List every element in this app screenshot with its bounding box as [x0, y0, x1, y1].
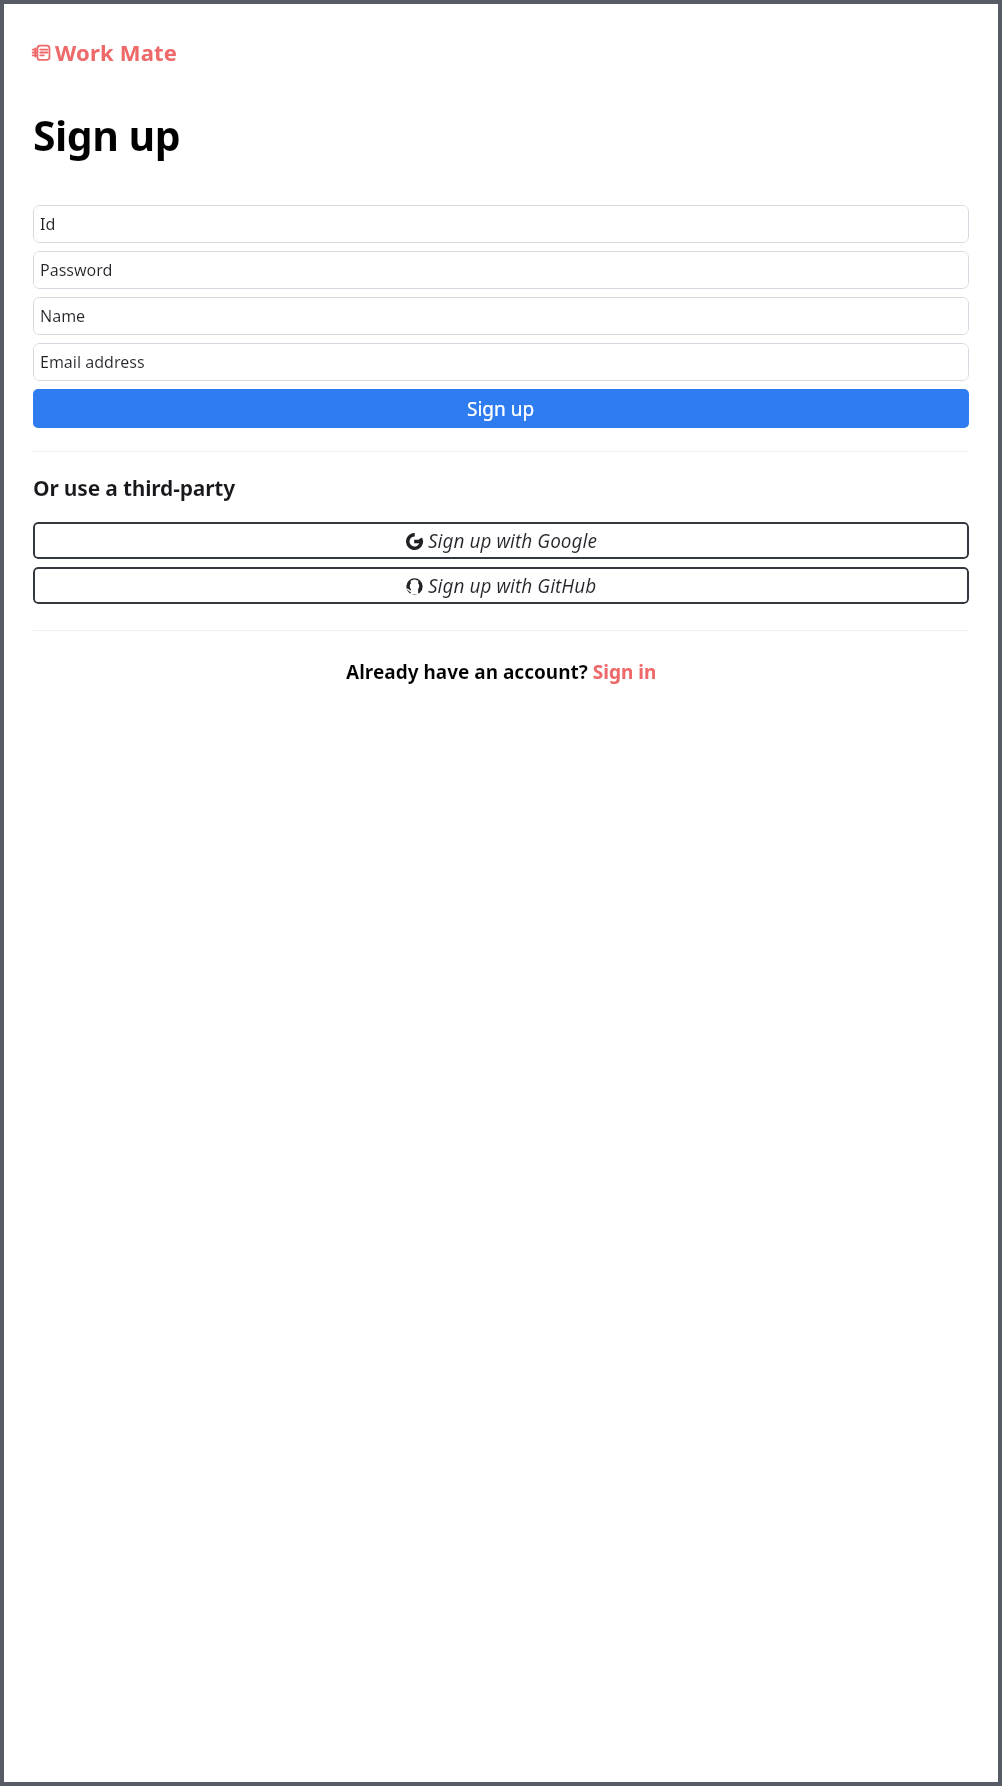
other: Google — [406, 533, 423, 550]
other: GitHub — [406, 578, 423, 595]
staticText: Already have an account? Sign in — [346, 659, 657, 685]
staticText: Email address — [40, 351, 145, 373]
staticText: Sign up with GitHub — [428, 573, 597, 599]
button[interactable]: Sign up — [33, 389, 969, 428]
button[interactable]: Name — [33, 297, 969, 335]
button[interactable]: Work Mate logo — [33, 33, 178, 71]
other: Work Mate logo — [33, 44, 50, 61]
staticText: Sign up with Google — [428, 528, 597, 554]
button[interactable]: Email address — [33, 343, 969, 381]
staticText: Work Mate — [55, 37, 178, 67]
button[interactable]: Password — [33, 251, 969, 289]
staticText: Or use a third-party — [33, 474, 236, 503]
button[interactable]: Id — [33, 205, 969, 243]
staticText: Name — [40, 305, 86, 327]
button[interactable]: GitHub — [33, 567, 969, 604]
staticText: Sign up — [33, 107, 181, 163]
staticText: Password — [40, 259, 113, 281]
staticText: Id — [40, 213, 56, 235]
button[interactable]: Google — [33, 522, 969, 559]
staticText: Sign up — [467, 396, 535, 422]
button[interactable]: Already have an account? Sign in — [33, 655, 969, 689]
